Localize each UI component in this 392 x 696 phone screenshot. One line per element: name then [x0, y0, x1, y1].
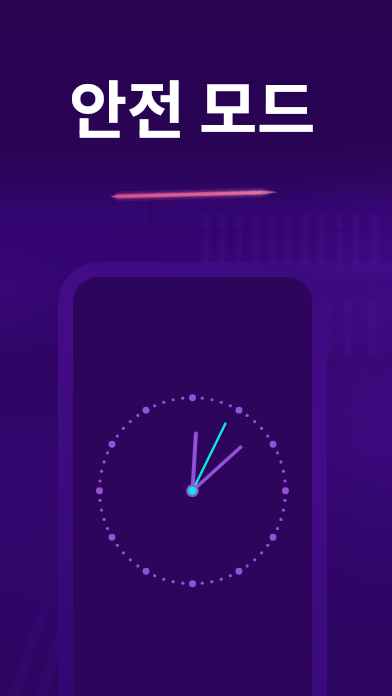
- button[interactable]: 안전 모드 휴대전화 미리보기: [58, 262, 327, 696]
- button[interactable]: 시계: [73, 277, 312, 696]
- staticText: 안전 모드: [0, 60, 388, 151]
